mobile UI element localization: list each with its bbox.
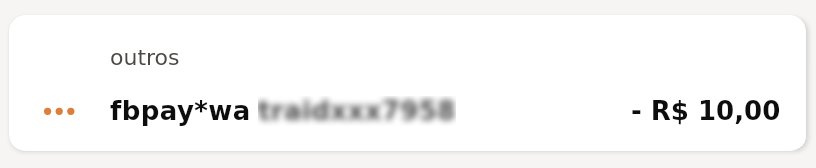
other: Categoria outros: [38, 96, 86, 126]
staticText: traidxxx7958: [258, 96, 456, 126]
staticText: outros: [110, 45, 180, 71]
button[interactable]: outros: [9, 15, 806, 151]
staticText: - R$ 10,00: [631, 96, 781, 126]
staticText: fbpay*wa: [110, 96, 251, 126]
